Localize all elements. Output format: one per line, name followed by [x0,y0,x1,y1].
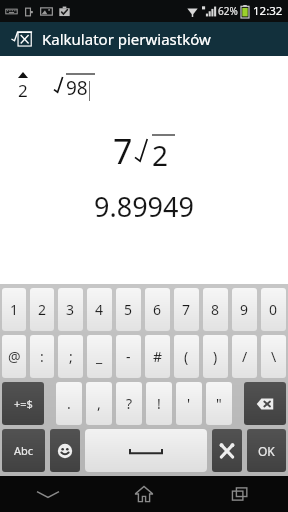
button[interactable]: 7 [174,288,199,331]
staticText: , [97,394,101,413]
staticText: 2 [38,300,47,319]
button[interactable]: " [206,382,232,425]
button[interactable]: - [116,335,141,378]
button[interactable]: 0 [261,288,286,331]
button[interactable]: +=$ [2,382,44,425]
button[interactable]: @ [2,335,26,378]
button[interactable]: Emoji [50,429,80,472]
staticText: Abc [14,443,34,458]
button[interactable]: Abc [2,429,45,472]
button[interactable]: ? [116,382,142,425]
staticText: Kalkulator pierwiastków [42,29,211,49]
button[interactable]: Home [96,476,192,512]
staticText: # [153,347,163,366]
staticText: OK [258,443,275,459]
button[interactable]: Settings [212,429,242,472]
button[interactable]: 3 [58,288,83,331]
staticText: +=$ [14,396,33,411]
staticText: 5 [124,300,133,319]
button[interactable]: 4 [87,288,112,331]
staticText: 7 [113,128,133,174]
staticText: 2 [152,136,169,174]
staticText: 4 [95,300,104,319]
staticText: ' [187,394,191,413]
staticText: 2 [18,79,28,102]
staticText: 9 [240,300,249,319]
staticText: : [40,347,44,366]
staticText: ( [184,347,189,366]
staticText: 0 [269,300,278,319]
button[interactable]: # [145,335,170,378]
button[interactable]: ' [176,382,202,425]
staticText: @ [8,347,21,366]
button[interactable]: Recent apps [192,476,288,512]
button[interactable]: ; [58,335,83,378]
staticText: 62% [218,4,238,18]
button[interactable]: Backspace [244,382,286,425]
button[interactable]: ! [146,382,172,425]
staticText: / [242,347,248,366]
staticText: ) [213,347,218,366]
button[interactable]: Space [85,429,207,472]
staticText: 6 [153,300,162,319]
staticText: 3 [66,300,75,319]
button[interactable]: 1 [2,288,26,331]
button[interactable]: / [232,335,257,378]
button[interactable]: ) [203,335,228,378]
staticText: 98 [66,75,88,101]
button[interactable]: 6 [145,288,170,331]
staticText: \ [271,347,277,366]
button[interactable]: _ [87,335,112,378]
button[interactable]: 9 [232,288,257,331]
button[interactable]: : [30,335,54,378]
button[interactable]: ( [174,335,199,378]
staticText: _ [96,347,103,366]
staticText: ? [126,394,133,413]
button[interactable]: . [56,382,82,425]
button[interactable]: 2 [30,288,54,331]
button[interactable]: OK [247,429,286,472]
staticText: ! [157,394,161,413]
staticText: 8 [211,300,220,319]
staticText: " [216,394,222,413]
button[interactable]: \ [261,335,286,378]
button[interactable]: 8 [203,288,228,331]
button[interactable]: 5 [116,288,141,331]
staticText: 9.89949 [0,188,288,225]
staticText: ; [69,347,73,366]
staticText: - [126,347,131,366]
staticText: . [67,394,71,413]
button[interactable]: Hide keyboard [0,476,96,512]
staticText: 7 [182,300,191,319]
staticText: 1 [10,300,19,319]
staticText: 12:32 [253,3,283,19]
button[interactable]: , [86,382,112,425]
